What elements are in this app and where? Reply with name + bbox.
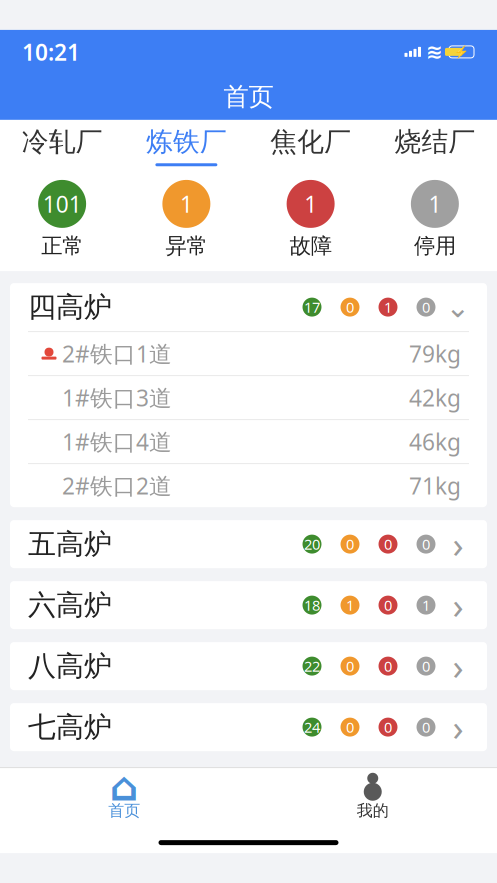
staticText: 六高炉 xyxy=(28,588,112,622)
staticText: 我的 xyxy=(357,801,389,820)
staticText: 24 xyxy=(304,717,320,737)
staticText: 101 xyxy=(43,189,82,219)
staticText: ⌂ xyxy=(110,764,139,809)
staticText: 1#铁口4道 xyxy=(62,427,172,457)
button[interactable]: 1 xyxy=(248,180,373,259)
staticText: 1 xyxy=(384,297,392,317)
button[interactable]: 2#铁口1道 xyxy=(10,332,487,375)
button[interactable]: ⌂ xyxy=(0,772,248,822)
button[interactable]: 炼铁厂 xyxy=(124,120,248,172)
button[interactable]: 101 xyxy=(0,180,124,259)
staticText: 1 xyxy=(428,189,441,219)
staticText: 2#铁口1道 xyxy=(62,339,172,369)
staticText: 42kg xyxy=(409,383,461,413)
staticText: 0 xyxy=(422,534,430,554)
staticText: 0 xyxy=(346,717,354,737)
button[interactable]: 1#铁口3道 xyxy=(10,376,487,419)
button[interactable]: 焦化厂 xyxy=(248,120,373,172)
button[interactable]: 八高炉 xyxy=(10,642,487,690)
button[interactable]: 四高炉 xyxy=(10,283,487,331)
staticText: 2#铁口2道 xyxy=(62,471,172,501)
button[interactable]: 1 xyxy=(373,180,497,259)
staticText: 冷轧厂 xyxy=(22,125,103,158)
staticText: 0 xyxy=(422,656,430,676)
staticText: 0 xyxy=(384,534,392,554)
staticText: 首页 xyxy=(108,801,140,820)
staticText: 0 xyxy=(384,717,392,737)
button[interactable]: 七高炉 xyxy=(10,703,487,751)
staticText: 71kg xyxy=(409,471,461,501)
staticText: 1#铁口3道 xyxy=(62,383,172,413)
staticText: 17 xyxy=(304,297,320,317)
staticText: 烧结厂 xyxy=(394,125,475,158)
staticText: 0 xyxy=(422,717,430,737)
staticText: 46kg xyxy=(409,427,461,457)
staticText: 18 xyxy=(304,595,320,615)
staticText: 五高炉 xyxy=(28,527,112,561)
staticText: 10:21 xyxy=(22,37,80,67)
staticText: 炼铁厂 xyxy=(146,125,227,158)
staticText: ≋ xyxy=(426,40,443,63)
staticText: 八高炉 xyxy=(28,649,112,683)
button[interactable]: 五高炉 xyxy=(10,520,487,568)
button[interactable]: 冷轧厂 xyxy=(0,120,124,172)
staticText: 1 xyxy=(304,189,317,219)
staticText: 20 xyxy=(304,534,320,554)
staticText: 1 xyxy=(180,189,193,219)
button[interactable]: 1#铁口4道 xyxy=(10,420,487,463)
staticText: 故障 xyxy=(290,233,332,259)
staticText: 异常 xyxy=(165,233,207,259)
staticText: 0 xyxy=(346,534,354,554)
staticText: 四高炉 xyxy=(28,290,112,324)
staticText: 0 xyxy=(422,297,430,317)
staticText: 正常 xyxy=(41,233,83,259)
button[interactable]: 烧结厂 xyxy=(373,120,497,172)
staticText: 七高炉 xyxy=(28,710,112,744)
button[interactable]: 六高炉 xyxy=(10,581,487,629)
staticText: 0 xyxy=(346,656,354,676)
staticText: › xyxy=(452,703,463,751)
staticText: 首页 xyxy=(223,81,273,112)
staticText: 22 xyxy=(304,656,320,676)
staticText: › xyxy=(452,520,463,568)
staticText: › xyxy=(452,642,463,690)
staticText: ⚡ xyxy=(454,45,469,59)
staticText: 0 xyxy=(384,656,392,676)
staticText: ⌄ xyxy=(445,290,470,324)
button[interactable]: 1 xyxy=(124,180,248,259)
staticText: 0 xyxy=(346,297,354,317)
staticText: 0 xyxy=(384,595,392,615)
staticText: 1 xyxy=(422,595,430,615)
staticText: › xyxy=(452,581,463,629)
button[interactable]: 2#铁口2道 xyxy=(10,464,487,507)
staticText: 79kg xyxy=(409,339,461,369)
staticText: 1 xyxy=(346,595,354,615)
staticText: 焦化厂 xyxy=(270,125,351,158)
staticText: 停用 xyxy=(414,233,456,259)
button[interactable]: 我的 xyxy=(248,772,497,822)
